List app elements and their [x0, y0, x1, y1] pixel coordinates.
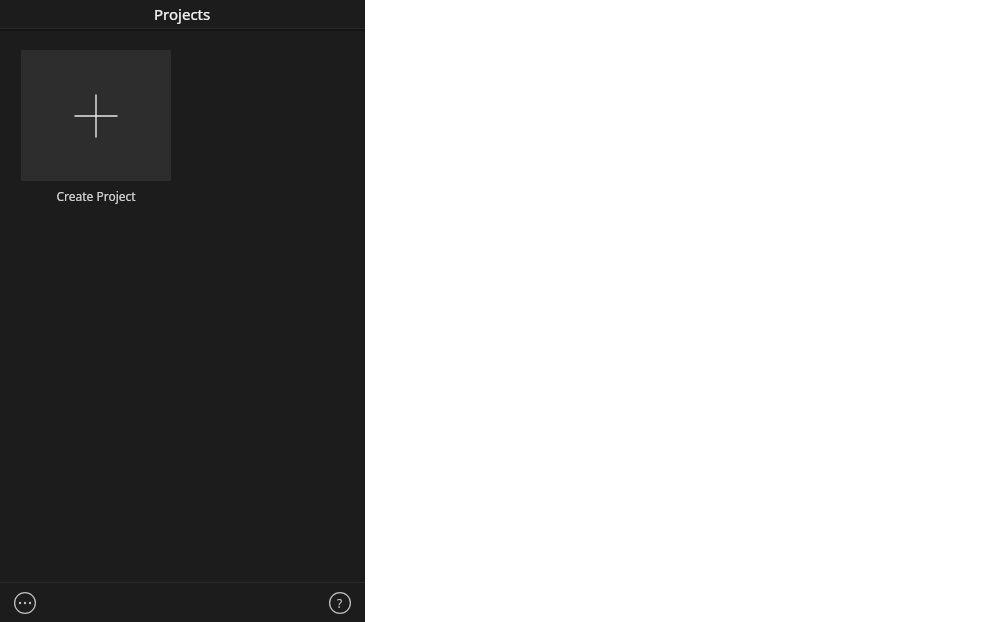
staticText: Projects: [154, 4, 211, 24]
button[interactable]: More options: [14, 592, 36, 614]
staticText: ?: [337, 595, 343, 611]
button[interactable]: [21, 50, 171, 181]
staticText: Create Project: [56, 188, 136, 204]
button[interactable]: Help: [329, 592, 351, 614]
